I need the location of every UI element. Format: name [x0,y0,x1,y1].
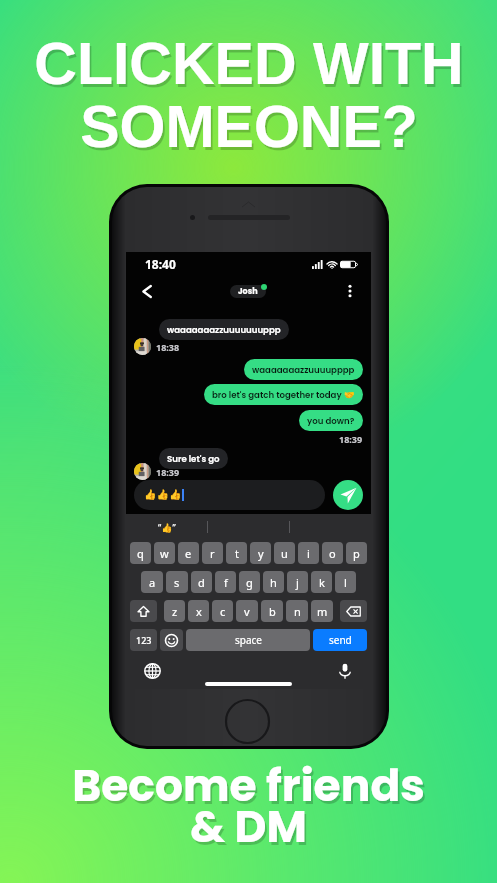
button[interactable]: 123 [130,629,157,651]
button[interactable]: i [298,542,319,564]
staticText: l [344,575,347,590]
staticText: waaaaaaazzuuuuuuuppp [167,324,281,336]
button[interactable]: x [188,600,209,622]
button[interactable]: e [178,542,199,564]
button[interactable]: h [263,571,284,593]
button[interactable]: v [236,600,258,622]
staticText: space [235,633,262,647]
staticText: t [235,546,239,561]
staticText: SOMEONE? [82,97,420,163]
staticText: bro let's gatch together today 🤝 [212,389,355,401]
staticText: a [149,575,156,590]
staticText: 👍👍👍 [144,489,182,501]
button[interactable]: space [186,629,310,651]
other: Backspace [346,604,361,619]
button[interactable]: send [313,629,367,651]
button[interactable]: 👍👍👍 [134,480,325,510]
button[interactable]: Change language [143,662,161,680]
button[interactable]: t [226,542,247,564]
button[interactable]: Josh [230,285,266,298]
button[interactable]: j [287,571,308,593]
button[interactable]: Emoji [160,629,183,651]
button[interactable]: waaaaaaazzuuuupppp [244,359,363,380]
staticText: g [246,575,253,590]
button[interactable]: Backspace [340,600,367,622]
staticText: u [281,546,288,561]
staticText: & DM [190,796,307,858]
staticText: & DM [192,799,309,861]
button[interactable]: w [154,542,175,564]
staticText: send [329,633,352,647]
button[interactable]: Profile photo [134,338,151,355]
button[interactable]: you down? [299,410,363,431]
button[interactable]: q [130,542,151,564]
staticText: w [160,546,169,561]
staticText: “👍” [158,521,176,533]
staticText: x [196,604,202,619]
staticText: h [270,575,277,590]
button[interactable]: g [239,571,260,593]
staticText: 123 [136,634,152,646]
staticText: m [317,604,328,619]
staticText: 18:39 [156,466,180,478]
staticText: you down? [307,415,355,427]
staticText: waaaaaaazzuuuupppp [252,364,355,376]
staticText: q [137,546,144,561]
button[interactable]: b [261,600,283,622]
staticText: y [258,546,264,561]
staticText: b [269,604,276,619]
staticText: v [244,604,250,619]
staticText: e [185,546,192,561]
button[interactable]: Profile photo [134,463,151,480]
staticText: z [172,604,178,619]
button[interactable]: u [274,542,295,564]
staticText: n [294,604,301,619]
button[interactable]: Shift [130,600,157,622]
staticText: CLICKED WITH [34,31,464,97]
button[interactable]: f [215,571,236,593]
staticText: Become friends [74,758,427,820]
staticText: r [210,546,215,561]
staticText: c [220,604,226,619]
staticText: s [174,575,180,590]
button[interactable]: a [141,571,163,593]
button[interactable]: o [322,542,343,564]
button[interactable]: Back [136,280,158,302]
staticText: o [329,546,336,561]
button[interactable]: k [311,571,332,593]
staticText: p [353,546,360,561]
button[interactable]: More options [339,280,361,302]
staticText: SOMEONE? [80,94,418,160]
staticText: CLICKED WITH [36,34,466,100]
button[interactable]: d [191,571,212,593]
button[interactable]: Sure let's go [159,448,228,469]
button[interactable]: waaaaaaazzuuuuuuuppp [159,319,289,340]
button[interactable]: z [164,600,185,622]
staticText: Sure let's go [167,453,220,465]
button[interactable]: r [202,542,223,564]
other: Shift [137,605,150,618]
staticText: 18:38 [156,341,180,353]
staticText: Become friends [72,755,425,817]
staticText: f [224,575,228,590]
button[interactable]: s [166,571,188,593]
staticText: k [319,575,325,590]
staticText: 18:40 [145,256,176,272]
button[interactable]: m [311,600,333,622]
staticText: d [198,575,205,590]
button[interactable]: p [346,542,367,564]
button[interactable]: l [335,571,356,593]
button[interactable]: Send [333,480,363,510]
staticText: i [307,546,310,561]
button[interactable]: bro let's gatch together today 🤝 [204,384,363,405]
staticText: Josh [238,286,258,297]
staticText: 18:39 [339,433,363,445]
staticText: j [296,575,299,590]
button[interactable]: c [212,600,233,622]
button[interactable]: n [286,600,308,622]
button[interactable]: y [250,542,271,564]
button[interactable]: Dictate [336,662,354,680]
